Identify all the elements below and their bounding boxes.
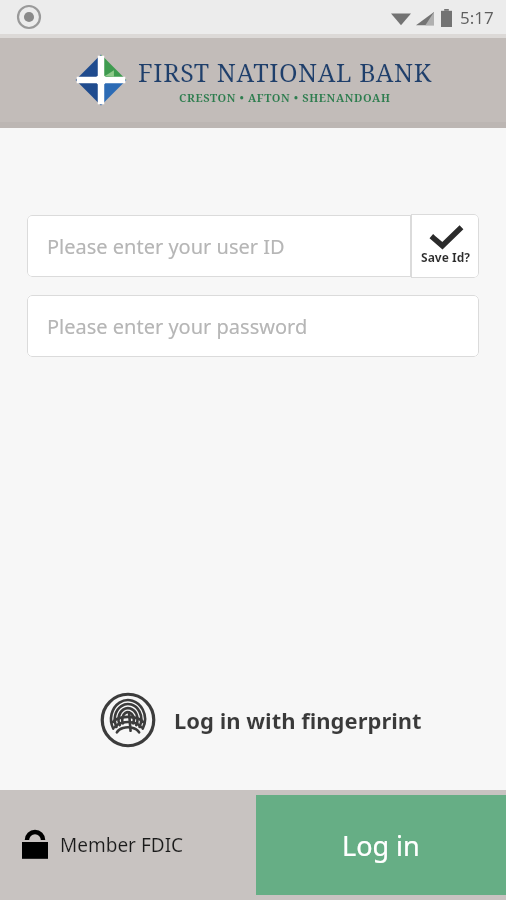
staticText: Save Id? bbox=[421, 249, 470, 265]
button[interactable]: Please enter your password bbox=[27, 295, 479, 357]
staticText: Log in with fingerprint bbox=[174, 705, 422, 735]
button[interactable]: Log in bbox=[256, 795, 506, 895]
staticText: Member FDIC bbox=[60, 832, 184, 858]
button[interactable]: Member FDIC bbox=[22, 830, 184, 860]
button[interactable]: Please enter your user ID bbox=[27, 215, 411, 277]
staticText: Please enter your user ID bbox=[47, 233, 285, 260]
staticText: FIRST NATIONAL BANK bbox=[138, 55, 432, 89]
staticText: 5:17 bbox=[460, 6, 494, 29]
staticText: CRESTON • AFTON • SHENANDOAH bbox=[179, 90, 391, 105]
staticText: Log in bbox=[342, 827, 420, 864]
button[interactable]: Log in with fingerprint bbox=[96, 688, 426, 752]
staticText: Please enter your password bbox=[47, 313, 308, 340]
button[interactable]: Save Id bbox=[411, 214, 479, 278]
